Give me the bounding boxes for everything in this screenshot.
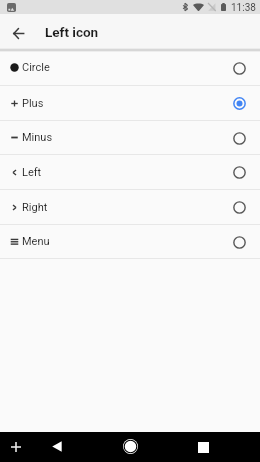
staticText: Menu — [22, 235, 50, 248]
button[interactable]: Navigate up — [7, 21, 29, 43]
button[interactable]: Not selected — [229, 128, 249, 148]
staticText: Left — [22, 166, 42, 179]
button[interactable]: Minus — [0, 121, 260, 154]
button[interactable]: Back — [47, 437, 66, 456]
button[interactable]: Menu — [0, 225, 260, 258]
staticText: Circle — [22, 61, 50, 74]
staticText: Minus — [22, 131, 53, 144]
button[interactable]: Selected — [229, 93, 249, 113]
button[interactable]: Plus — [0, 86, 260, 120]
button[interactable]: Not selected — [229, 162, 249, 182]
button[interactable]: Circle — [0, 50, 260, 85]
button[interactable]: Not selected — [229, 232, 249, 252]
staticText: Left icon — [45, 24, 99, 40]
staticText: Plus — [22, 97, 44, 110]
button[interactable]: Left — [0, 155, 260, 189]
staticText: 11:38 — [231, 2, 256, 14]
button[interactable]: Add — [6, 437, 25, 456]
button[interactable]: Right — [0, 190, 260, 224]
button[interactable]: Recent apps — [194, 438, 213, 457]
button[interactable]: Home — [120, 436, 141, 457]
staticText: Right — [22, 201, 48, 214]
button[interactable]: Not selected — [229, 197, 249, 217]
button[interactable]: Not selected — [229, 58, 249, 78]
